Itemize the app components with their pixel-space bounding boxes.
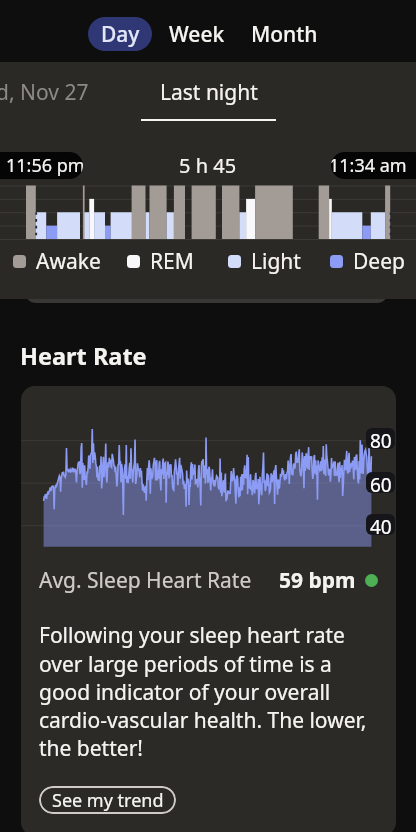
- staticText: Deep: [353, 247, 405, 276]
- button[interactable]: Light: [228, 246, 301, 276]
- staticText: 5 h 45: [179, 152, 237, 179]
- staticText: Following your sleep heart rate over lar…: [39, 621, 378, 763]
- staticText: 60: [370, 472, 392, 493]
- staticText: Last night: [160, 78, 258, 107]
- button[interactable]: Month: [249, 17, 319, 51]
- button[interactable]: REM: [127, 246, 194, 276]
- staticText: Week: [169, 20, 225, 49]
- button[interactable]: See my trend: [39, 786, 176, 814]
- staticText: Month: [251, 20, 318, 49]
- button[interactable]: Day: [88, 17, 152, 51]
- staticText: d, Nov 27: [0, 78, 89, 107]
- staticText: 11:34 am: [331, 153, 407, 178]
- staticText: Awake: [36, 247, 101, 276]
- button[interactable]: Week: [167, 17, 226, 51]
- staticText: 80: [370, 428, 392, 449]
- staticText: Avg. Sleep Heart Rate: [39, 566, 252, 595]
- staticText: Heart Rate: [20, 340, 147, 372]
- staticText: 59 bpm: [279, 566, 356, 595]
- staticText: See my trend: [52, 788, 164, 813]
- button[interactable]: Last night: [141, 62, 276, 122]
- staticText: Day: [101, 20, 140, 49]
- button[interactable]: d, Nov 27: [0, 70, 96, 114]
- staticText: REM: [150, 247, 194, 276]
- button[interactable]: Deep: [330, 246, 405, 276]
- staticText: Light: [251, 247, 301, 276]
- button[interactable]: Awake: [13, 246, 101, 276]
- staticText: 11:56 pm: [6, 153, 83, 178]
- staticText: 40: [370, 514, 392, 535]
